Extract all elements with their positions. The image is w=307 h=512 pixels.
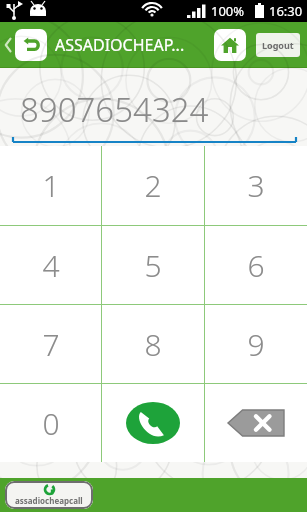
staticText: 8 — [144, 324, 162, 365]
button[interactable]: Call — [102, 384, 204, 462]
button[interactable]: Back — [15, 29, 47, 61]
button[interactable]: Backspace — [205, 384, 307, 462]
button[interactable]: Logout — [256, 33, 300, 57]
button[interactable]: 7 — [0, 305, 101, 383]
button[interactable]: 3 — [205, 146, 307, 225]
staticText: Logout — [262, 39, 294, 51]
staticText: 1 — [42, 165, 60, 206]
button[interactable]: 8 — [102, 305, 204, 383]
button[interactable]: 5 — [102, 226, 204, 304]
staticText: 16:30 — [269, 2, 303, 20]
button[interactable]: Home — [214, 29, 246, 61]
button[interactable]: 6 — [205, 226, 307, 304]
button[interactable]: 4 — [0, 226, 101, 304]
button[interactable]: 9 — [205, 305, 307, 383]
staticText: assadiocheapcall — [15, 495, 83, 506]
button[interactable]: 2 — [102, 146, 204, 225]
staticText: 3 — [247, 165, 265, 206]
button[interactable]: assadiocheapcall — [5, 481, 93, 509]
staticText: 5 — [144, 245, 162, 286]
staticText: 4 — [42, 245, 60, 286]
staticText: ASSADIOCHEAP... — [55, 34, 214, 56]
staticText: 0 — [42, 403, 60, 444]
staticText: 9 — [247, 324, 265, 365]
staticText: 100% — [211, 2, 245, 20]
staticText: 6 — [247, 245, 265, 286]
staticText: 7 — [42, 324, 60, 365]
staticText: 2 — [144, 165, 162, 206]
button[interactable]: 1 — [0, 146, 101, 225]
button[interactable]: 0 — [0, 384, 101, 462]
staticText: 8907654324 — [20, 87, 209, 132]
